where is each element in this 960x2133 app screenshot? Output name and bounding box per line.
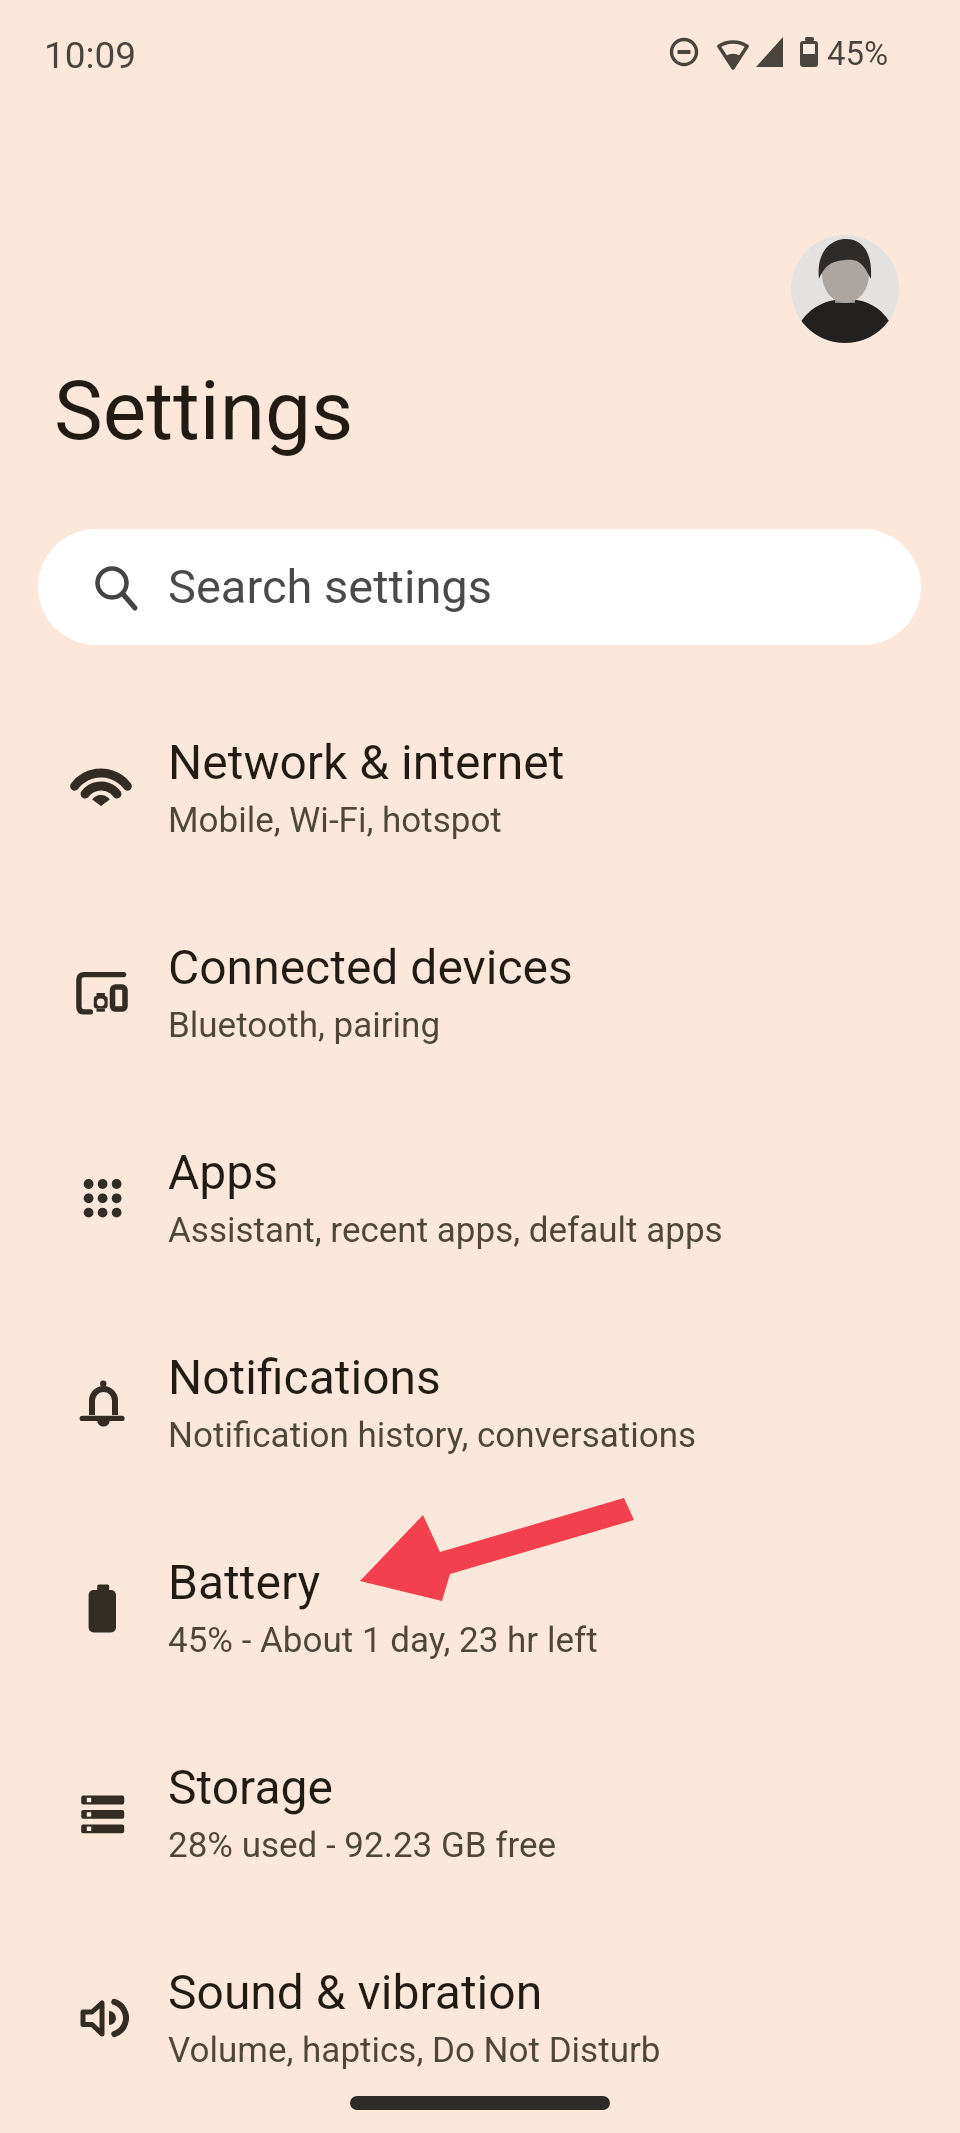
button[interactable]: Network & internet <box>0 715 960 920</box>
staticText: Storage <box>168 1759 333 1815</box>
button[interactable] <box>791 235 899 343</box>
staticText: Settings <box>54 363 354 459</box>
staticText: 45% <box>827 34 889 73</box>
staticText: 10:09 <box>44 34 137 77</box>
button[interactable]: Battery <box>0 1535 960 1740</box>
staticText: Battery <box>168 1554 321 1610</box>
button[interactable]: Sound & vibration <box>0 1945 960 2133</box>
staticText: Notifications <box>168 1349 441 1405</box>
staticText: Volume, haptics, Do Not Disturb <box>168 2030 661 2071</box>
button[interactable]: Storage <box>0 1740 960 1945</box>
button[interactable]: Notifications <box>0 1330 960 1535</box>
staticText: 28% used - 92.23 GB free <box>168 1825 557 1866</box>
staticText: Bluetooth, pairing <box>168 1005 441 1046</box>
staticText: Assistant, recent apps, default apps <box>168 1210 723 1251</box>
staticText: Sound & vibration <box>168 1964 543 2020</box>
button[interactable]: Search settings <box>38 529 921 645</box>
staticText: 45% - About 1 day, 23 hr left <box>168 1620 598 1661</box>
staticText: Notification history, conversations <box>168 1415 697 1456</box>
staticText: Network & internet <box>168 734 565 790</box>
staticText: Mobile, Wi-Fi, hotspot <box>168 800 502 841</box>
button[interactable]: Connected devices <box>0 920 960 1125</box>
staticText: Search settings <box>168 559 492 614</box>
button[interactable]: Apps <box>0 1125 960 1330</box>
staticText: Apps <box>168 1144 278 1200</box>
staticText: Connected devices <box>168 939 573 995</box>
